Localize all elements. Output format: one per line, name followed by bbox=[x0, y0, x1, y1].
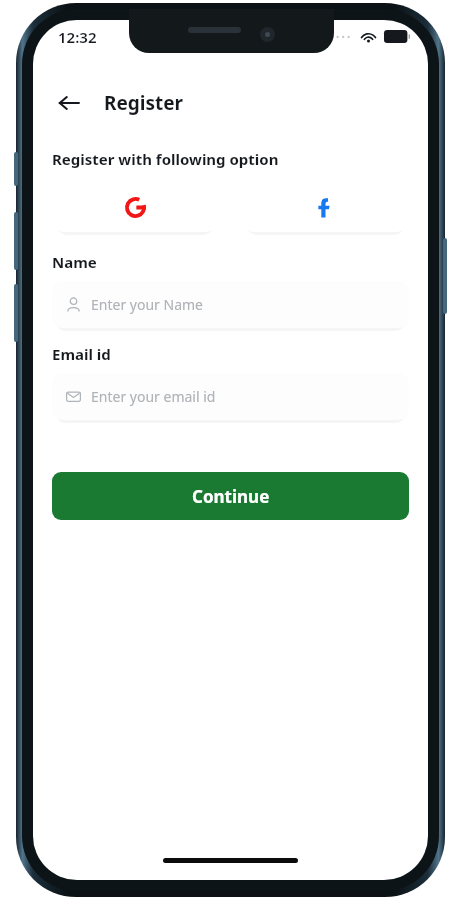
staticText: Register with following option bbox=[52, 149, 279, 169]
staticText: Name bbox=[52, 252, 97, 272]
staticText: Enter your email id bbox=[91, 387, 216, 406]
button[interactable]: Continue bbox=[52, 472, 409, 520]
staticText: Register bbox=[104, 90, 184, 116]
button[interactable]: Enter your Name bbox=[52, 281, 409, 328]
button[interactable]: Sign up with Facebook bbox=[242, 182, 409, 232]
staticText: Email id bbox=[52, 344, 111, 364]
button[interactable]: Sign up with Google bbox=[52, 182, 218, 232]
staticText: Enter your Name bbox=[91, 295, 203, 314]
staticText: Continue bbox=[192, 485, 270, 508]
button[interactable]: Back bbox=[51, 85, 87, 121]
button[interactable]: Enter your email id bbox=[52, 373, 409, 420]
staticText: 12:32 bbox=[58, 27, 97, 47]
